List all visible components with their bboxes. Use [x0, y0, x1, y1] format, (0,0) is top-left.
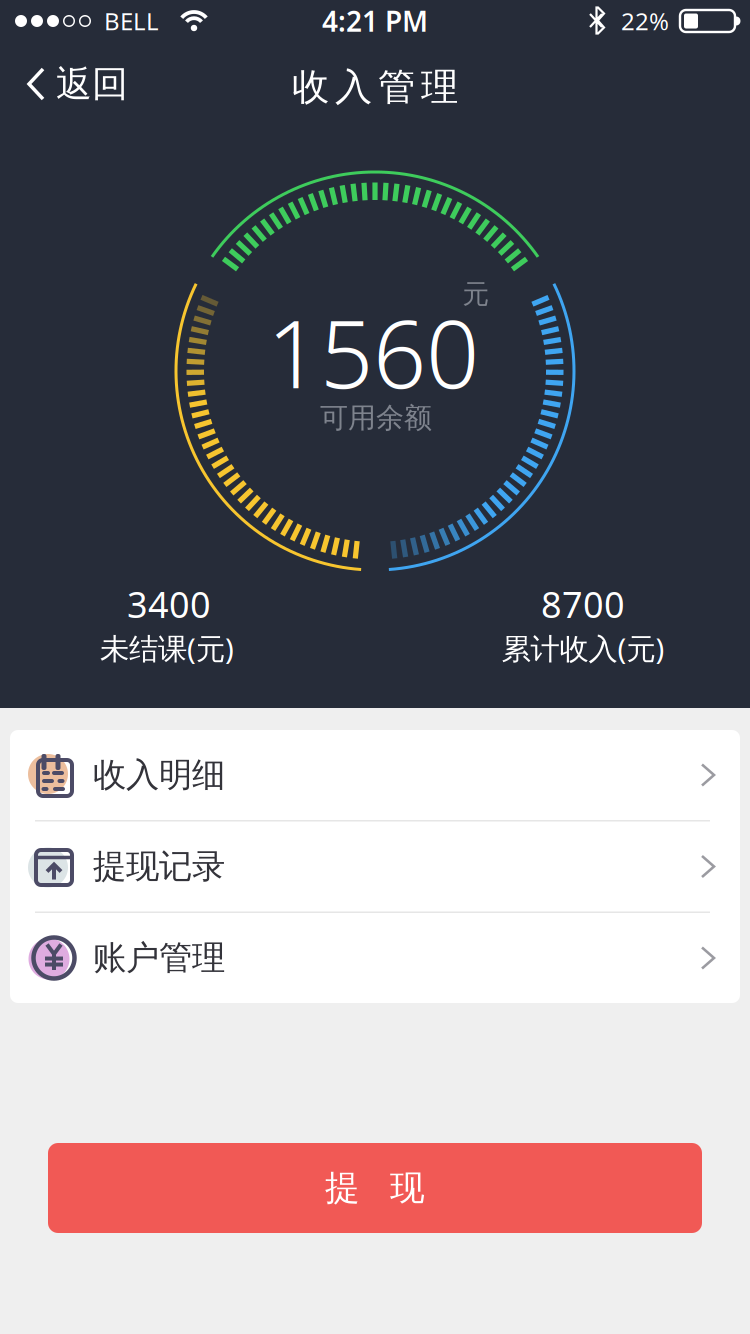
staticText: 22%: [621, 5, 669, 37]
button[interactable]: 提: [48, 1143, 702, 1233]
staticText: BELL: [104, 5, 159, 37]
button[interactable]: 提现记录: [10, 821, 740, 911]
staticText: 提现记录: [93, 846, 225, 887]
staticText: 提: [325, 1167, 360, 1209]
staticText: 4:21 PM: [322, 2, 428, 40]
staticText: 账户管理: [93, 937, 225, 978]
staticText: 可用余额: [320, 401, 432, 435]
staticText: 1560: [267, 290, 479, 414]
button[interactable]: 账户管理: [10, 913, 740, 1003]
staticText: 元: [462, 278, 489, 310]
button[interactable]: 收入明细: [10, 730, 740, 820]
staticText: 未结课(元): [100, 628, 234, 667]
staticText: 3400: [127, 580, 211, 628]
staticText: 现: [390, 1167, 425, 1209]
staticText: 返回: [56, 62, 128, 106]
button[interactable]: 返回: [0, 62, 128, 106]
staticText: 累计收入(元): [501, 628, 664, 667]
staticText: 8700: [541, 580, 625, 628]
staticText: 收入明细: [93, 754, 225, 795]
staticText: 收入管理: [292, 64, 458, 110]
